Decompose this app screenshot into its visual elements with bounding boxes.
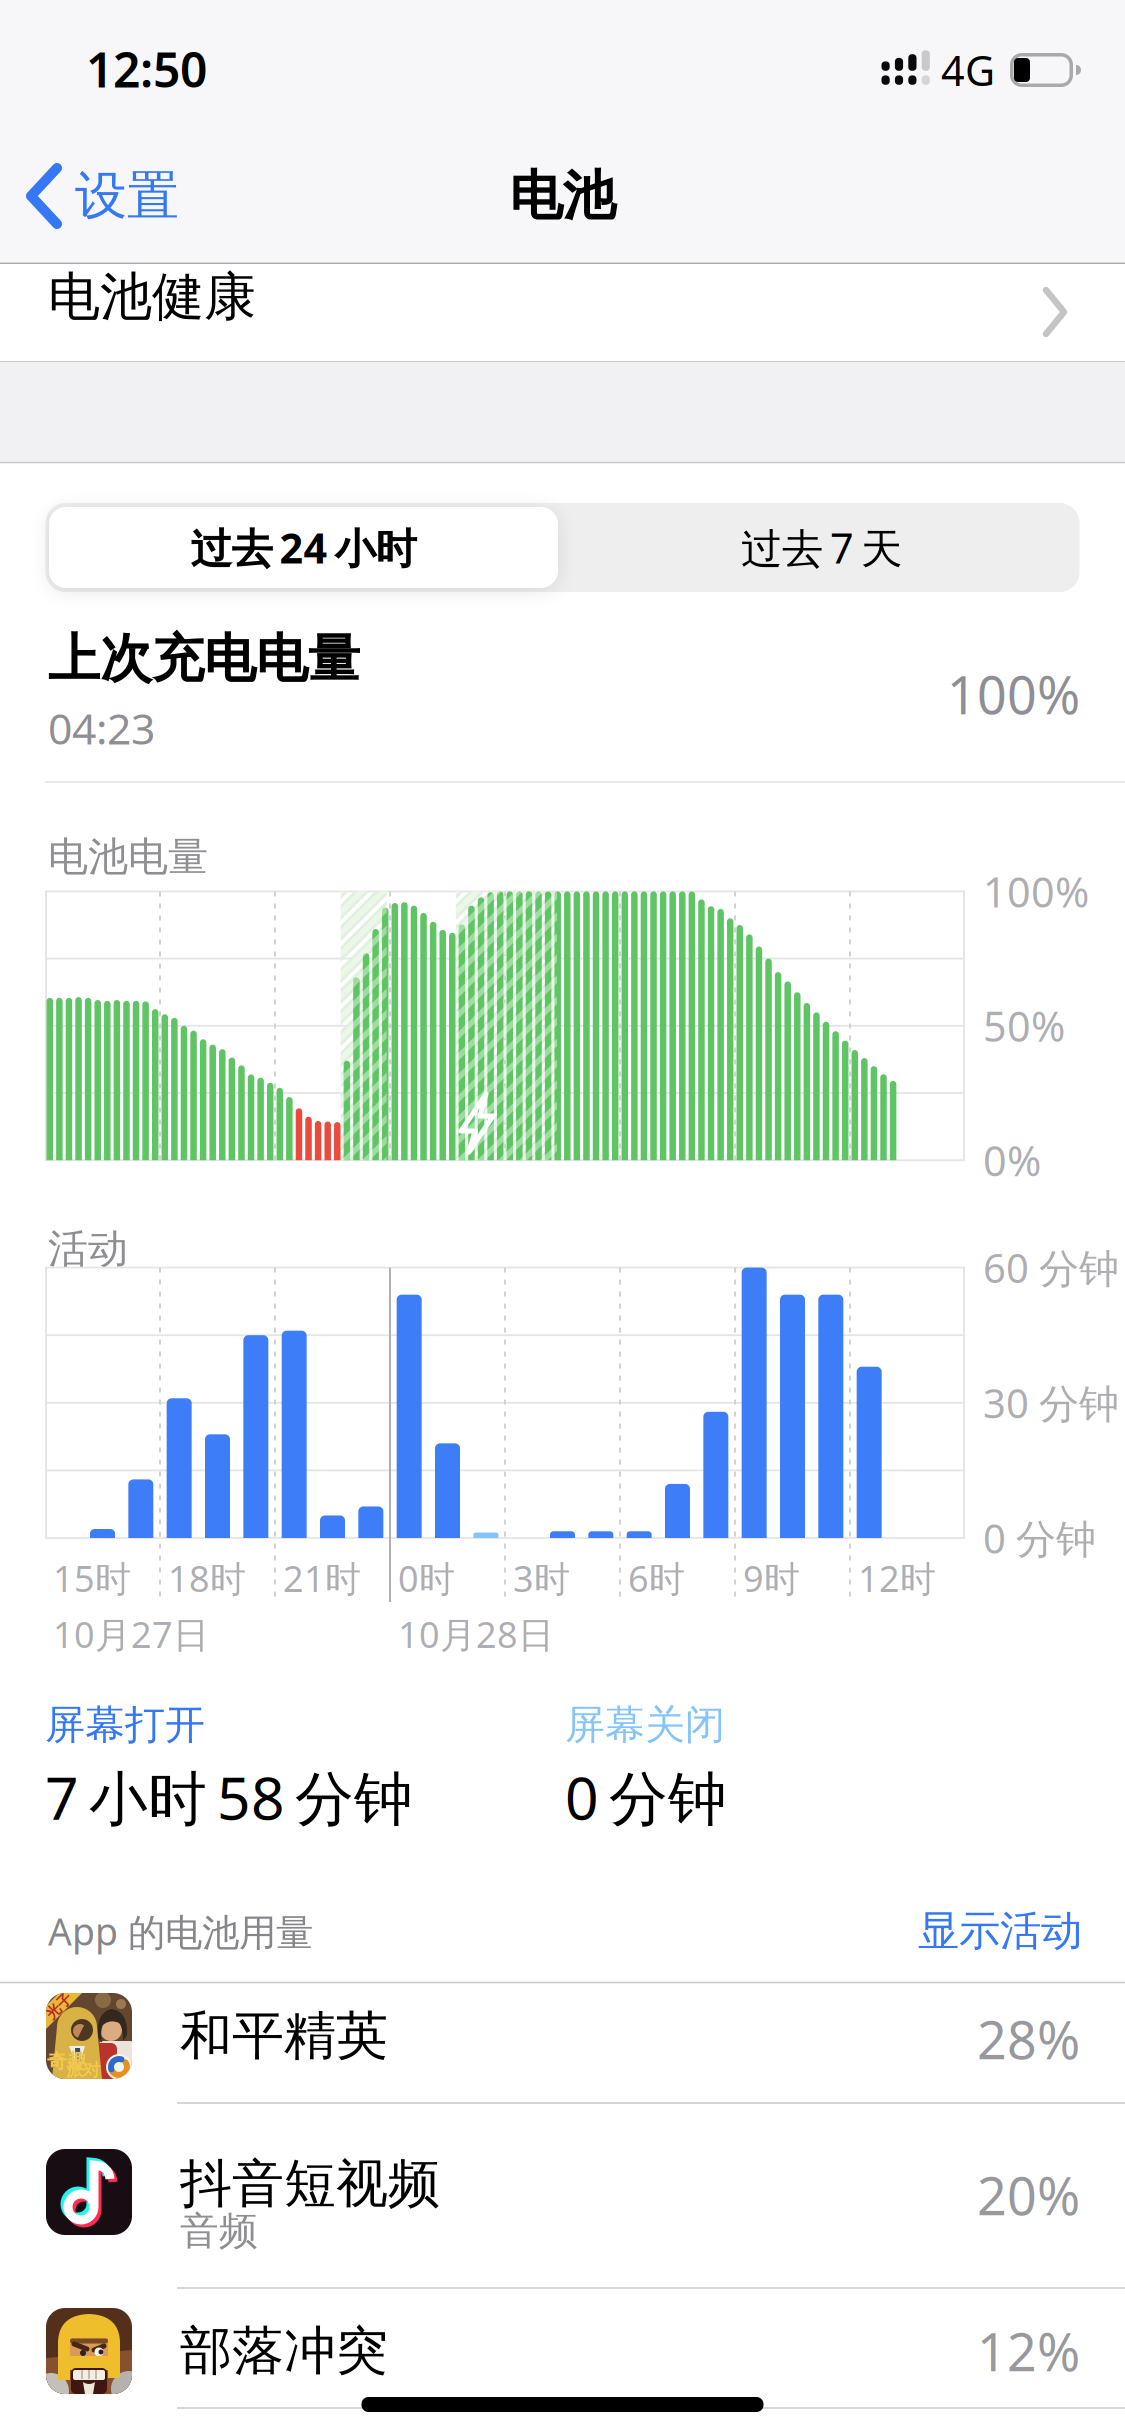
staticText: 50%: [983, 998, 1065, 1053]
staticText: 10月27日: [53, 1610, 209, 1658]
button[interactable]: 部落冲突: [0, 2288, 1125, 2436]
staticText: 电池健康: [48, 265, 256, 329]
button[interactable]: 过去 24 小时: [49, 507, 558, 588]
staticText: 30 分钟: [983, 1376, 1119, 1429]
staticText: 0 分钟: [565, 1758, 727, 1836]
staticText: 18时: [168, 1554, 246, 1602]
staticText: 设置: [75, 164, 179, 228]
staticText: 12%: [977, 2316, 1080, 2386]
staticText: 过去 24 小时: [190, 520, 416, 575]
staticText: 屏幕打开: [45, 1700, 205, 1749]
staticText: 电池: [509, 163, 615, 229]
staticText: 屏幕关闭: [565, 1700, 725, 1749]
button[interactable]: 屏幕关闭: [555, 1695, 975, 1835]
button[interactable]: 光子: [0, 1983, 1125, 2103]
staticText: 上次充电电量: [48, 627, 360, 691]
staticText: 和平精英: [180, 2004, 388, 2068]
staticText: 过去 7 天: [741, 520, 902, 575]
staticText: 0时: [398, 1554, 455, 1602]
staticText: 21时: [283, 1554, 361, 1602]
staticText: 抖音短视频: [180, 2152, 440, 2216]
staticText: 奇趣: [47, 2049, 87, 2073]
staticText: 04:23: [48, 700, 155, 756]
staticText: 20%: [977, 2160, 1080, 2230]
staticText: 7 小时 58 分钟: [45, 1758, 413, 1836]
staticText: 60 分钟: [983, 1241, 1119, 1294]
staticText: 部落冲突: [180, 2319, 388, 2383]
staticText: 12:50: [86, 37, 207, 101]
staticText: 0%: [983, 1133, 1041, 1188]
staticText: 音频: [180, 2207, 258, 2255]
button[interactable]: 电池健康: [0, 264, 1125, 361]
button[interactable]: 抖音短视频: [0, 2103, 1125, 2288]
button[interactable]: 屏幕打开: [45, 1695, 555, 1835]
staticText: 3时: [513, 1554, 570, 1602]
staticText: 6时: [628, 1554, 685, 1602]
staticText: 15时: [53, 1554, 131, 1602]
staticText: 28%: [977, 2004, 1080, 2074]
staticText: 100%: [947, 659, 1080, 729]
staticText: 9时: [743, 1554, 800, 1602]
button[interactable]: 显示活动: [918, 1906, 1082, 1956]
staticText: 派对: [66, 2059, 100, 2081]
button[interactable]: 过去 7 天: [567, 507, 1076, 588]
staticText: 10月28日: [398, 1610, 554, 1658]
staticText: 100%: [983, 864, 1089, 919]
staticText: 电池电量: [48, 832, 208, 881]
staticText: 0 分钟: [983, 1511, 1096, 1564]
staticText: 显示活动: [918, 1906, 1082, 1956]
staticText: 4G: [941, 43, 995, 97]
staticText: App 的电池用量: [48, 1906, 313, 1956]
staticText: 12时: [858, 1554, 936, 1602]
button[interactable]: 返回设置: [0, 151, 220, 241]
staticText: 光子: [44, 1997, 74, 2015]
staticText: 活动: [48, 1224, 128, 1273]
